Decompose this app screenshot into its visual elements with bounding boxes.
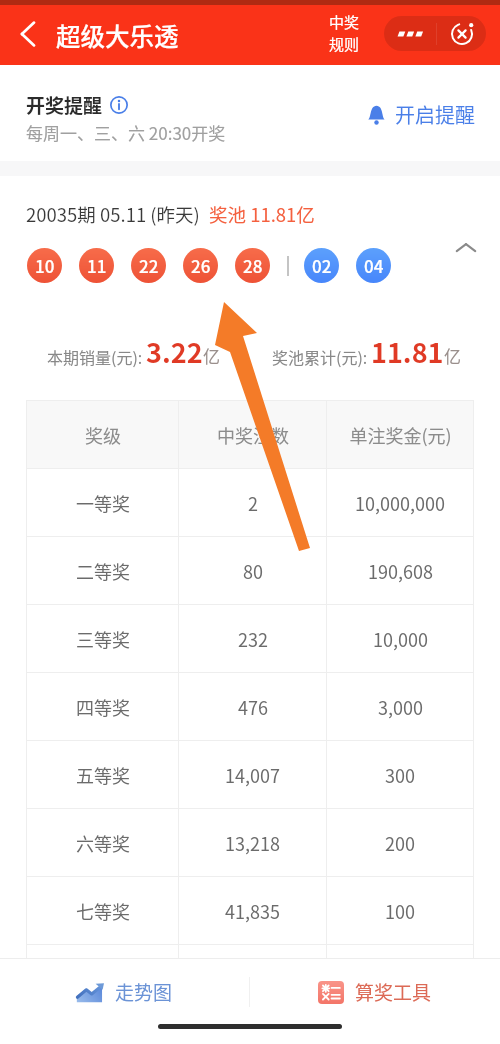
staticText: 亿 — [444, 343, 461, 368]
staticText: 中奖注数 — [217, 422, 289, 448]
staticText: 190,608 — [368, 558, 433, 584]
staticText: 亿 — [203, 343, 220, 368]
staticText: 开启提醒 — [395, 100, 475, 129]
staticText: 三等奖 — [76, 626, 130, 652]
staticText: 走势图 — [115, 978, 173, 1006]
staticText: 15 — [390, 966, 410, 992]
staticText: 六等奖 — [76, 830, 130, 856]
staticText: 本期销量(元): — [47, 345, 146, 368]
staticText: 11.81 — [371, 332, 444, 371]
staticText: 100 — [385, 898, 415, 924]
staticText: 11 — [87, 253, 107, 278]
staticText: 开奖提醒 — [26, 91, 103, 119]
staticText: 20035期 05.11 (昨天) — [26, 201, 209, 228]
staticText: 四等奖 — [76, 694, 130, 720]
button[interactable]: More options — [384, 16, 436, 51]
button[interactable]: 走势图 — [0, 963, 249, 1021]
staticText: 232 — [238, 626, 268, 652]
staticText: 80 — [243, 558, 263, 584]
staticText: 单注奖金(元) — [349, 422, 452, 448]
staticText: 算奖工具 — [355, 978, 432, 1006]
staticText: 10,000 — [373, 626, 428, 652]
staticText: 476 — [238, 694, 268, 720]
staticText: 10 — [35, 253, 55, 278]
staticText: 超级大乐透 — [56, 18, 179, 53]
staticText: 奖池 11.81亿 — [209, 201, 315, 228]
staticText: 13,218 — [225, 830, 280, 856]
staticText: 02 — [312, 253, 332, 278]
staticText: 二等奖 — [76, 558, 130, 584]
staticText: 14,007 — [225, 762, 280, 788]
staticText: 3,000 — [378, 694, 423, 720]
staticText: 10,000,000 — [355, 490, 445, 516]
staticText: 41,835 — [225, 898, 280, 924]
button[interactable]: Collapse — [448, 230, 484, 266]
staticText: 26 — [191, 253, 211, 278]
button[interactable]: Close — [437, 16, 486, 51]
button[interactable]: Back — [6, 12, 50, 56]
staticText: 八等奖 — [76, 966, 130, 992]
staticText: 200 — [385, 830, 415, 856]
staticText: 04 — [364, 253, 384, 278]
staticText: 3.22 — [146, 332, 203, 371]
staticText: 每周一、三、六 20:30开奖 — [26, 120, 226, 145]
staticText: 2 — [248, 490, 258, 516]
staticText: 300 — [385, 762, 415, 788]
staticText: 奖级 — [85, 422, 121, 448]
button[interactable]: 算奖工具 — [250, 963, 500, 1021]
staticText: 五等奖 — [76, 762, 130, 788]
staticText: 一等奖 — [76, 490, 130, 516]
staticText: 七等奖 — [76, 898, 130, 924]
staticText: 奖池累计(元): — [272, 345, 371, 368]
staticText: 22 — [139, 253, 159, 278]
staticText: 中奖 — [329, 11, 360, 33]
staticText: 28 — [243, 253, 263, 278]
staticText: 规则 — [329, 33, 360, 55]
button[interactable]: 开启提醒 — [366, 100, 475, 129]
button[interactable]: 中奖 — [329, 11, 360, 55]
